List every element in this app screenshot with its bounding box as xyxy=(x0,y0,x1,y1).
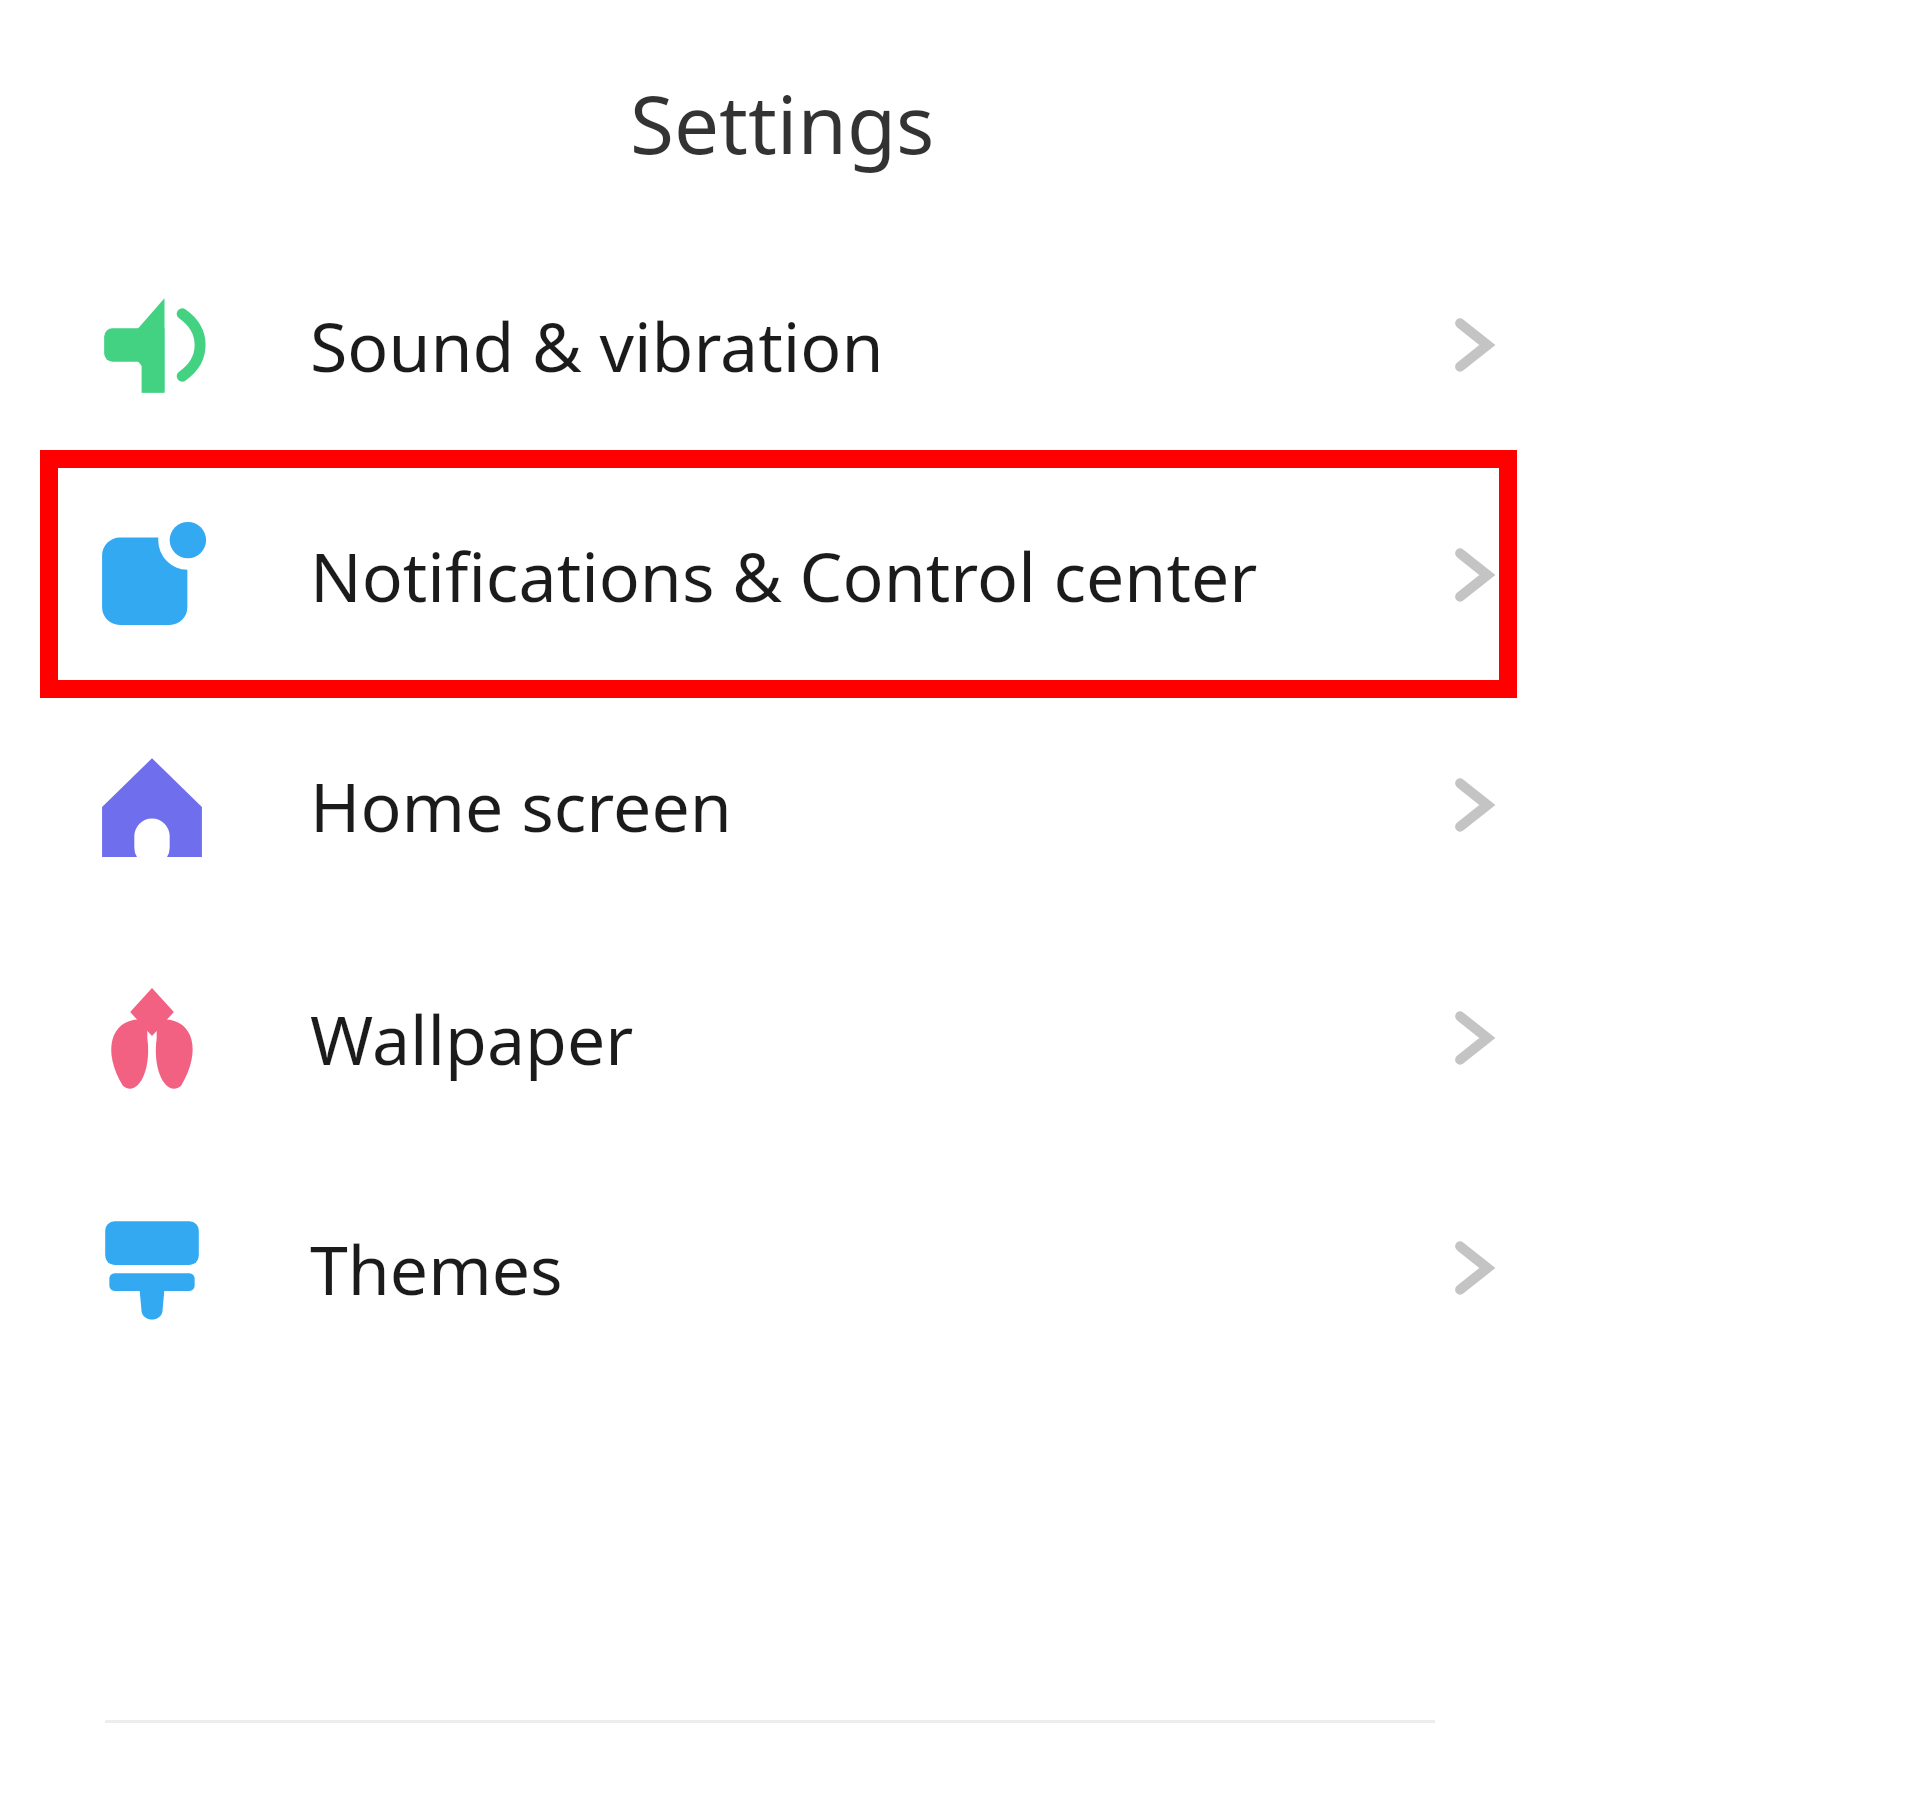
button[interactable]: Wallpaper xyxy=(0,923,1920,1153)
button[interactable]: Sound & vibration xyxy=(0,230,1920,460)
staticText: Notifications & Control center xyxy=(310,529,1258,622)
staticText: Sound & vibration xyxy=(310,299,884,392)
staticText: Themes xyxy=(310,1222,563,1315)
staticText: Wallpaper xyxy=(310,992,634,1085)
staticText: Settings xyxy=(630,68,935,177)
button[interactable]: Themes xyxy=(0,1153,1920,1383)
button[interactable]: Notifications & Control center xyxy=(0,460,1920,690)
staticText: Home screen xyxy=(310,759,732,852)
button[interactable]: Home screen xyxy=(0,690,1920,920)
